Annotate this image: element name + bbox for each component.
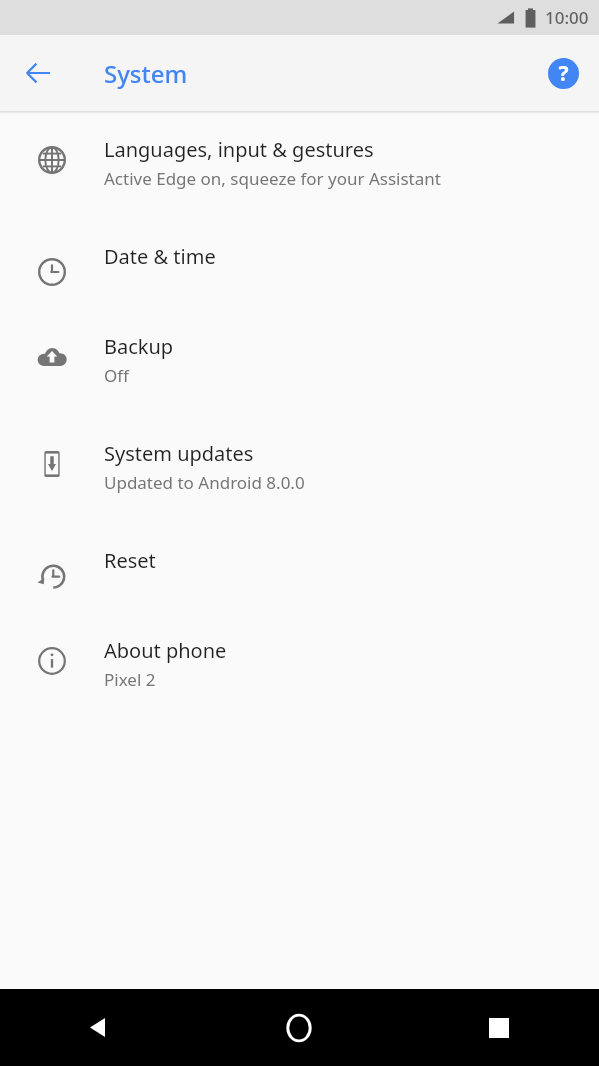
staticText: Pixel 2 bbox=[104, 668, 156, 691]
button[interactable]: About phone bbox=[0, 637, 599, 744]
button[interactable]: Help bbox=[535, 45, 591, 101]
staticText: Updated to Android 8.0.0 bbox=[104, 471, 305, 494]
button[interactable]: Back bbox=[8, 43, 68, 103]
staticText: System updates bbox=[104, 440, 254, 467]
staticText: ? bbox=[558, 59, 569, 88]
staticText: System bbox=[104, 57, 188, 90]
button[interactable]: Back bbox=[0, 989, 199, 1066]
staticText: 10:00 bbox=[545, 6, 589, 29]
button[interactable]: Date & time bbox=[0, 243, 599, 333]
button[interactable]: Reset bbox=[0, 547, 599, 637]
staticText: About phone bbox=[104, 637, 227, 664]
staticText: Date & time bbox=[104, 243, 216, 270]
button[interactable]: Home bbox=[199, 989, 399, 1066]
button[interactable]: Languages, input & gestures bbox=[0, 136, 599, 243]
staticText: Backup bbox=[104, 333, 174, 360]
button[interactable]: System updates bbox=[0, 440, 599, 547]
button[interactable]: Backup bbox=[0, 333, 599, 440]
staticText: Reset bbox=[104, 547, 156, 574]
button[interactable]: Recent apps bbox=[399, 989, 599, 1066]
staticText: Off bbox=[104, 364, 129, 387]
staticText: Languages, input & gestures bbox=[104, 136, 374, 163]
staticText: Active Edge on, squeeze for your Assista… bbox=[104, 167, 441, 190]
